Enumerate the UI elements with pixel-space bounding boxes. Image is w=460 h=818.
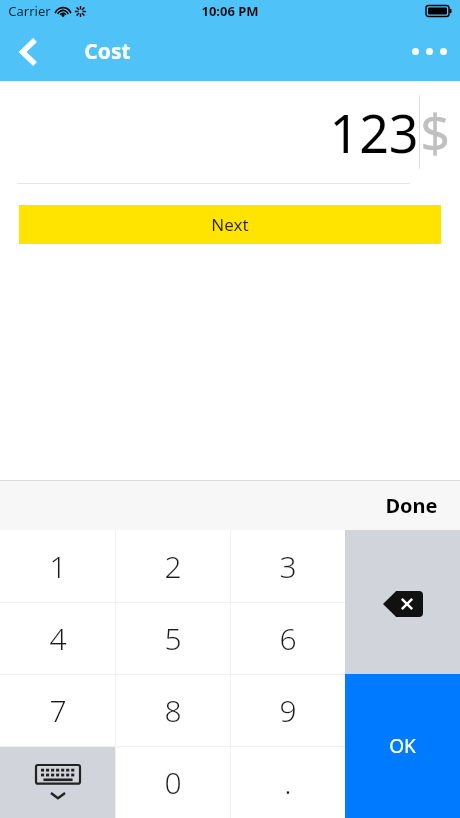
- button[interactable]: OK: [345, 674, 460, 818]
- button[interactable]: 0: [116, 747, 230, 818]
- staticText: 0: [164, 762, 182, 803]
- button[interactable]: 123: [0, 81, 460, 183]
- button[interactable]: 8: [116, 675, 230, 746]
- staticText: $: [420, 97, 450, 168]
- staticText: OK: [389, 733, 416, 759]
- staticText: Cost: [84, 37, 131, 66]
- staticText: 10:06 PM: [201, 2, 259, 20]
- staticText: 3: [279, 546, 297, 587]
- staticText: 4: [49, 618, 67, 659]
- button[interactable]: Next: [19, 205, 441, 244]
- staticText: 6: [279, 618, 297, 659]
- staticText: 9: [279, 690, 297, 731]
- button[interactable]: 3: [231, 530, 345, 602]
- button[interactable]: Hide keyboard: [0, 747, 115, 818]
- button[interactable]: 9: [231, 675, 345, 746]
- button[interactable]: 7: [0, 675, 115, 746]
- button[interactable]: 1: [0, 530, 115, 602]
- staticText: 1: [49, 546, 67, 587]
- button[interactable]: 6: [231, 603, 345, 674]
- button[interactable]: Done: [375, 486, 448, 525]
- button[interactable]: More options: [398, 22, 460, 81]
- button[interactable]: Backspace: [345, 530, 460, 674]
- staticText: .: [284, 762, 292, 803]
- staticText: Done: [385, 492, 438, 519]
- button[interactable]: 5: [116, 603, 230, 674]
- staticText: 2: [164, 546, 182, 587]
- button[interactable]: .: [231, 747, 345, 818]
- staticText: 123: [329, 97, 419, 168]
- staticText: 8: [164, 690, 182, 731]
- staticText: Next: [211, 213, 249, 236]
- staticText: 7: [49, 690, 67, 731]
- button[interactable]: Back: [0, 22, 58, 81]
- button[interactable]: 4: [0, 603, 115, 674]
- button[interactable]: 2: [116, 530, 230, 602]
- staticText: 5: [164, 618, 182, 659]
- staticText: Carrier: [8, 2, 51, 20]
